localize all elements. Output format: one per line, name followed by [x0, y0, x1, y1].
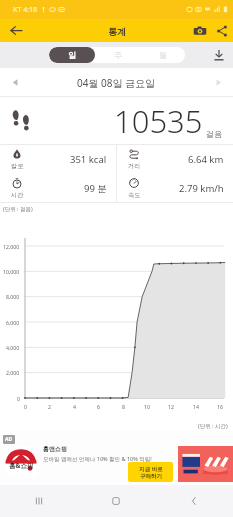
- staticText: 홈앤쇼핑: [43, 445, 67, 453]
- staticText: 10: [144, 403, 150, 410]
- staticText: 12: [168, 403, 174, 410]
- button[interactable]: 칼로: [0, 145, 116, 174]
- staticText: 6: [97, 403, 100, 410]
- staticText: 16: [217, 403, 223, 410]
- staticText: 2.79 km/h: [179, 182, 224, 195]
- staticText: 2: [48, 403, 51, 410]
- staticText: 거리: [128, 162, 141, 170]
- staticText: 99 분: [84, 182, 107, 195]
- staticText: (단위 : 걸음): [3, 205, 33, 213]
- staticText: AD: [5, 436, 13, 443]
- staticText: 6.64 km: [188, 153, 224, 166]
- staticText: 주: [114, 50, 122, 60]
- staticText: KT 4:18: [13, 5, 38, 15]
- staticText: 모바일 앱에선 언제나 10% 할인 & 10% 적립!: [43, 455, 152, 463]
- staticText: 10,000: [3, 268, 20, 275]
- staticText: 속도: [128, 191, 141, 199]
- staticText: 8,000: [6, 293, 20, 300]
- staticText: 지금 바로 구매하기: [139, 465, 163, 480]
- staticText: 10535: [114, 100, 203, 142]
- button[interactable]: Back: [155, 485, 233, 517]
- staticText: 8: [122, 403, 125, 410]
- button[interactable]: Back: [0, 19, 32, 42]
- staticText: 351 kcal: [70, 153, 107, 166]
- button[interactable]: Next day: [203, 68, 233, 97]
- staticText: 14: [193, 403, 199, 410]
- staticText: 월: [159, 50, 167, 60]
- button[interactable]: AD: [0, 430, 233, 485]
- staticText: 2,000: [6, 369, 20, 376]
- button[interactable]: 일: [49, 47, 95, 63]
- button[interactable]: Download: [205, 42, 233, 68]
- staticText: 4: [73, 403, 76, 410]
- button[interactable]: Recent apps: [0, 485, 77, 517]
- staticText: 걸음: [206, 129, 222, 139]
- button[interactable]: Previous day: [0, 68, 30, 97]
- button[interactable]: 주: [95, 47, 140, 63]
- button[interactable]: 속도: [117, 174, 233, 203]
- staticText: 0: [17, 395, 20, 402]
- button[interactable]: 지금 바로 구매하기: [128, 462, 173, 482]
- staticText: 통계: [108, 26, 126, 37]
- button[interactable]: Camera: [189, 19, 211, 42]
- staticText: 6,000: [6, 319, 20, 326]
- button[interactable]: 월: [140, 47, 185, 63]
- staticText: 4,000: [6, 344, 20, 351]
- staticText: 0: [24, 403, 27, 410]
- staticText: (단위 : 시간): [198, 422, 228, 430]
- staticText: 12,000: [3, 243, 20, 250]
- staticText: 시간: [11, 191, 24, 199]
- button[interactable]: Share: [211, 19, 233, 42]
- button[interactable]: 거리: [117, 145, 233, 174]
- staticText: 04월 08일 금요일: [77, 76, 156, 90]
- staticText: 칼로: [11, 162, 24, 170]
- staticText: 일: [68, 50, 76, 60]
- button[interactable]: 시간: [0, 174, 116, 203]
- button[interactable]: Home: [77, 485, 155, 517]
- staticText: 홈&쇼핑: [9, 461, 34, 470]
